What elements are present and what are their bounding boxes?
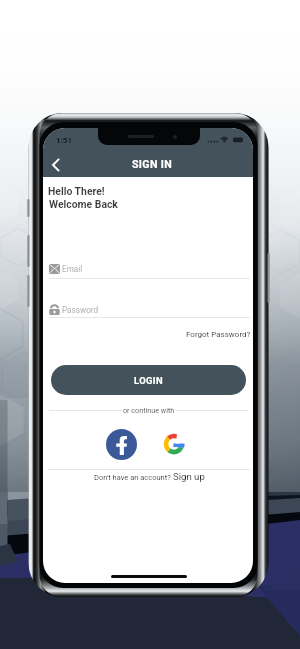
button[interactable]: Sign up [173,471,205,482]
staticText: Hello There! [48,185,105,197]
staticText: Don't have an account? [94,473,173,482]
staticText: or continue with [123,406,175,414]
button[interactable]: Sign in with Facebook [106,429,137,460]
button[interactable]: Password [48,302,248,320]
button[interactable]: Forgot Password? [173,327,249,341]
staticText: Forgot Password? [186,330,251,339]
button[interactable]: Back [45,152,67,178]
staticText: 1:51 [56,136,73,145]
button[interactable]: Email [48,261,248,280]
staticText: SIGN IN [132,158,172,170]
button[interactable]: LOGIN [51,365,246,395]
staticText: LOGIN [134,375,164,386]
staticText: Password [62,305,99,315]
button[interactable]: Sign in with Google [157,427,190,460]
staticText: Welcome Back [49,198,118,210]
staticText: Email [62,264,83,274]
